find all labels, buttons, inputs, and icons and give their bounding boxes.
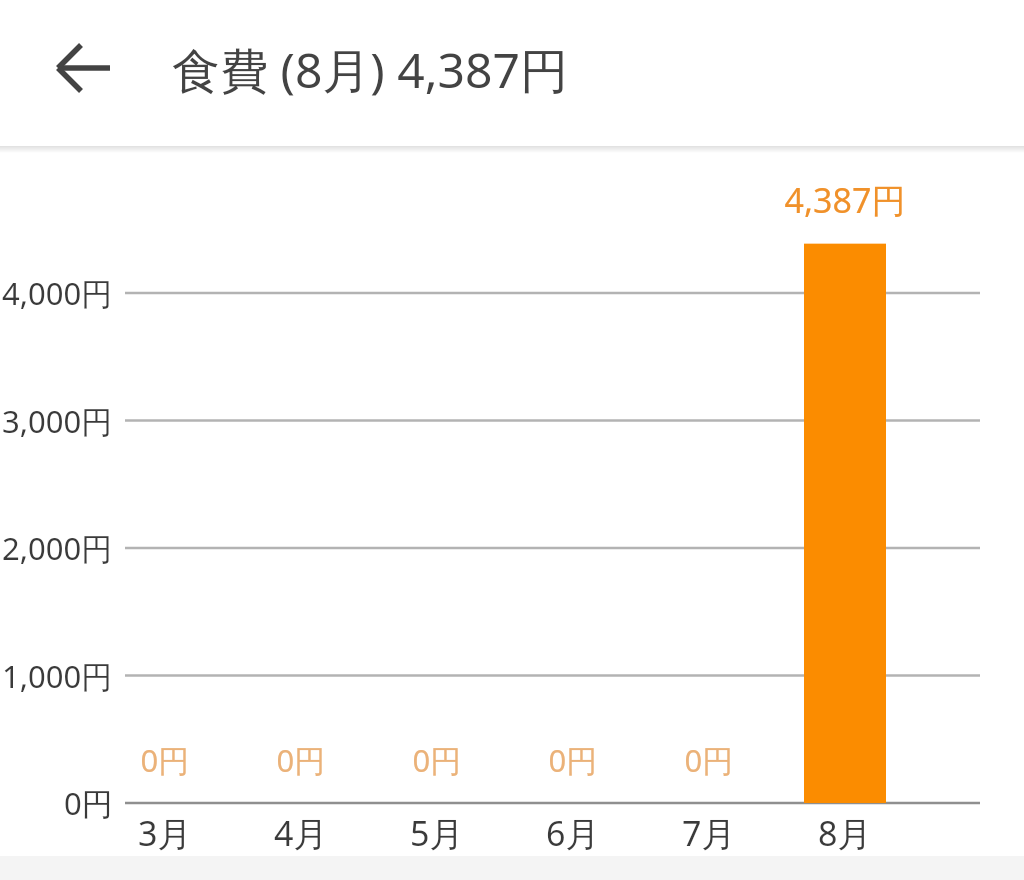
button[interactable]: Back [46,30,122,106]
staticText: 食費 (8月) 4,387円 [172,37,568,103]
